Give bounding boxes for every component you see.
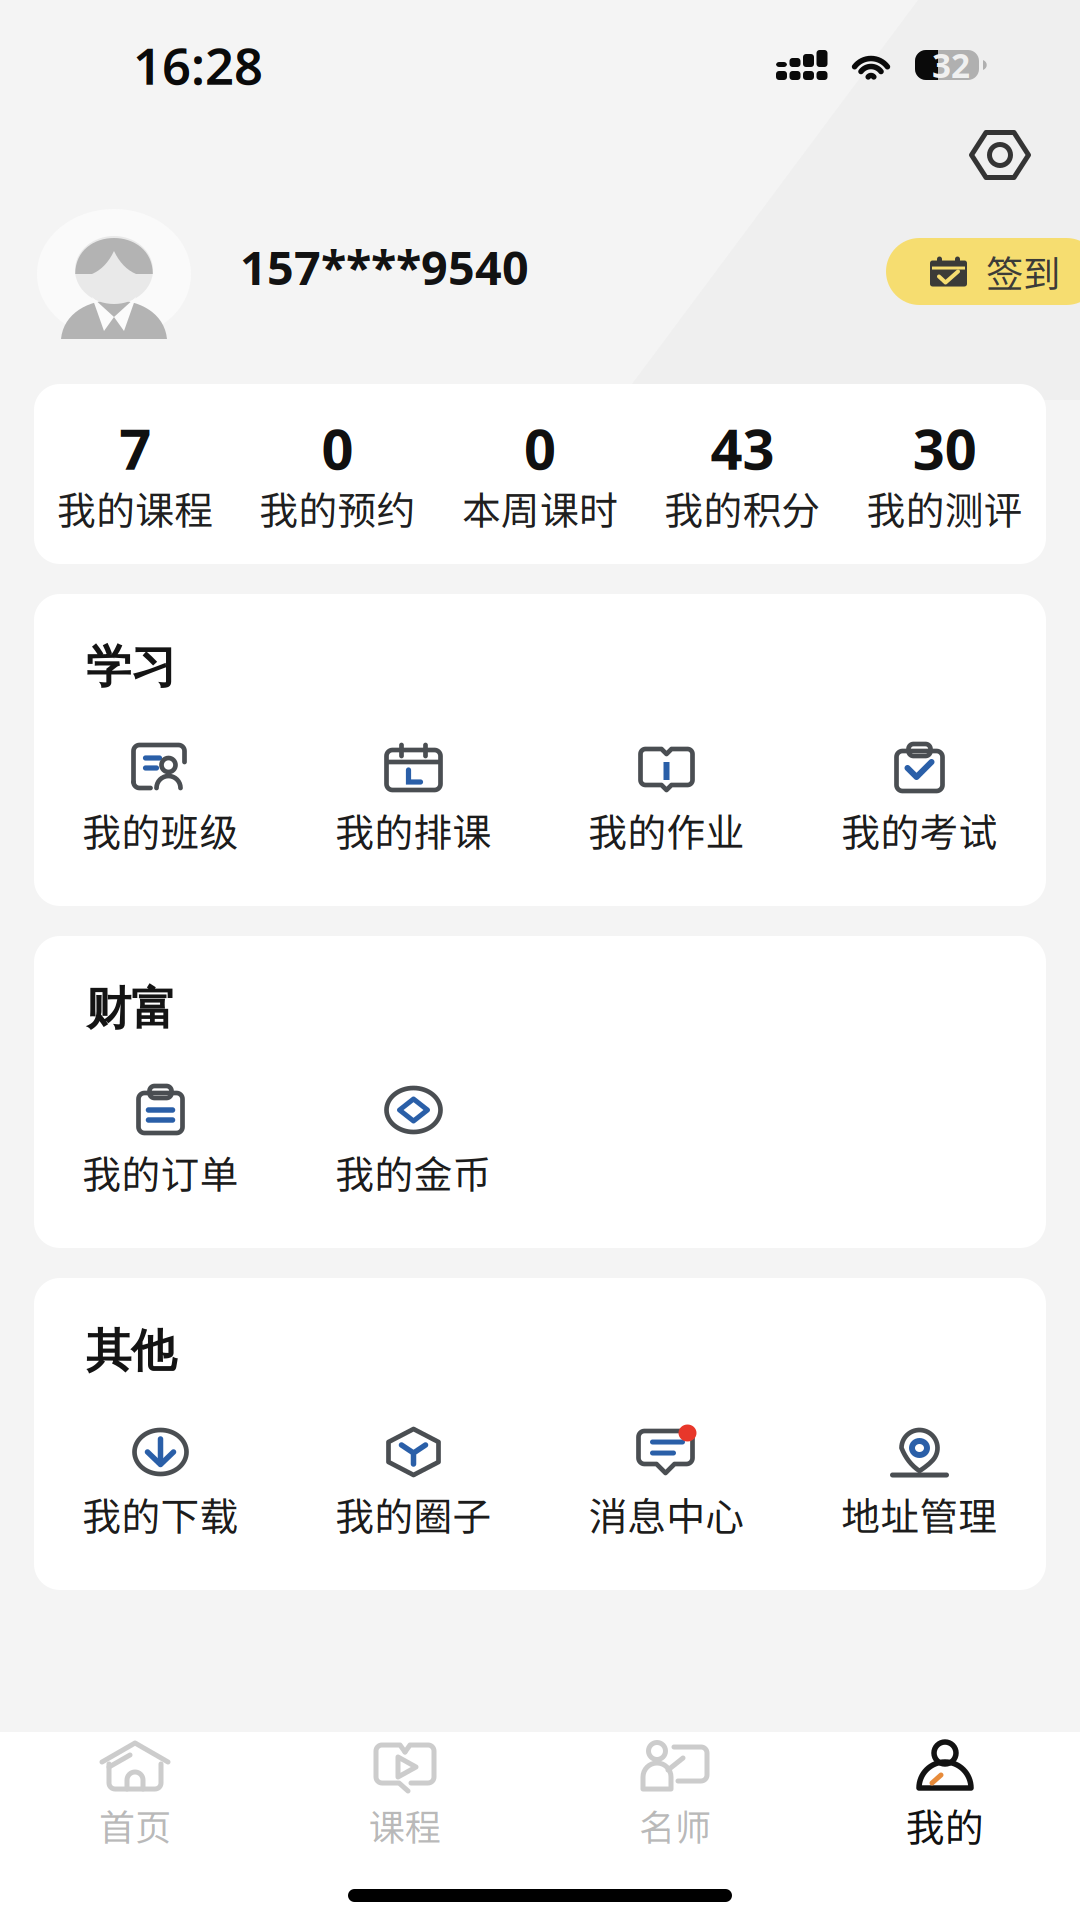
button[interactable]: 首页 [0, 1740, 270, 1846]
staticText: 0 [524, 411, 556, 485]
staticText: 本周课时 [462, 480, 618, 536]
button[interactable]: 签到 [886, 238, 1080, 305]
button[interactable]: 消息中心 [540, 1426, 793, 1536]
staticText: 16:28 [133, 31, 263, 99]
staticText: 我的圈子 [335, 1486, 491, 1542]
button[interactable]: 我的考试 [793, 742, 1046, 852]
staticText: 我的作业 [588, 802, 744, 858]
button[interactable]: 0 [439, 422, 641, 530]
staticText: 我的金币 [335, 1144, 491, 1200]
staticText: 我的班级 [82, 802, 238, 858]
staticText: 43 [710, 411, 774, 485]
staticText: 我的 [906, 1797, 984, 1853]
staticText: 其他 [86, 1322, 176, 1379]
staticText: 首页 [99, 1799, 171, 1851]
button[interactable]: 我的 [810, 1740, 1080, 1846]
staticText: 签到 [986, 244, 1060, 299]
button[interactable]: 我的作业 [540, 742, 793, 852]
staticText: 我的积分 [664, 480, 820, 536]
button[interactable]: Settings [952, 112, 1048, 198]
staticText: 我的排课 [335, 802, 491, 858]
staticText: 30 [913, 411, 977, 485]
staticText: 我的测评 [867, 480, 1023, 536]
button[interactable]: 0 [236, 422, 439, 530]
staticText: 名师 [639, 1799, 711, 1851]
staticText: 7 [119, 411, 151, 485]
staticText: 课程 [369, 1799, 441, 1851]
staticText: 157****9540 [240, 236, 529, 298]
button[interactable]: 我的订单 [34, 1084, 287, 1194]
staticText: 消息中心 [588, 1486, 744, 1542]
staticText: 32 [932, 43, 970, 87]
staticText: 我的预约 [260, 480, 416, 536]
button[interactable]: 我的圈子 [287, 1426, 540, 1536]
staticText: 我的下载 [82, 1486, 238, 1542]
staticText: 财富 [86, 980, 176, 1037]
staticText: 0 [322, 411, 354, 485]
button[interactable]: 43 [641, 422, 844, 530]
button[interactable]: 30 [844, 422, 1046, 530]
button[interactable]: 我的下载 [34, 1426, 287, 1536]
staticText: 地址管理 [841, 1486, 997, 1542]
staticText: 我的课程 [57, 480, 213, 536]
staticText: 学习 [86, 638, 176, 695]
button[interactable]: 地址管理 [793, 1426, 1046, 1536]
button[interactable]: 名师 [540, 1740, 810, 1846]
button[interactable]: 7 [34, 422, 236, 530]
staticText: 我的考试 [841, 802, 997, 858]
button[interactable]: 我的排课 [287, 742, 540, 852]
button[interactable]: 我的班级 [34, 742, 287, 852]
button[interactable]: 我的金币 [287, 1084, 540, 1194]
staticText: 我的订单 [82, 1144, 238, 1200]
button[interactable]: 课程 [270, 1740, 540, 1846]
